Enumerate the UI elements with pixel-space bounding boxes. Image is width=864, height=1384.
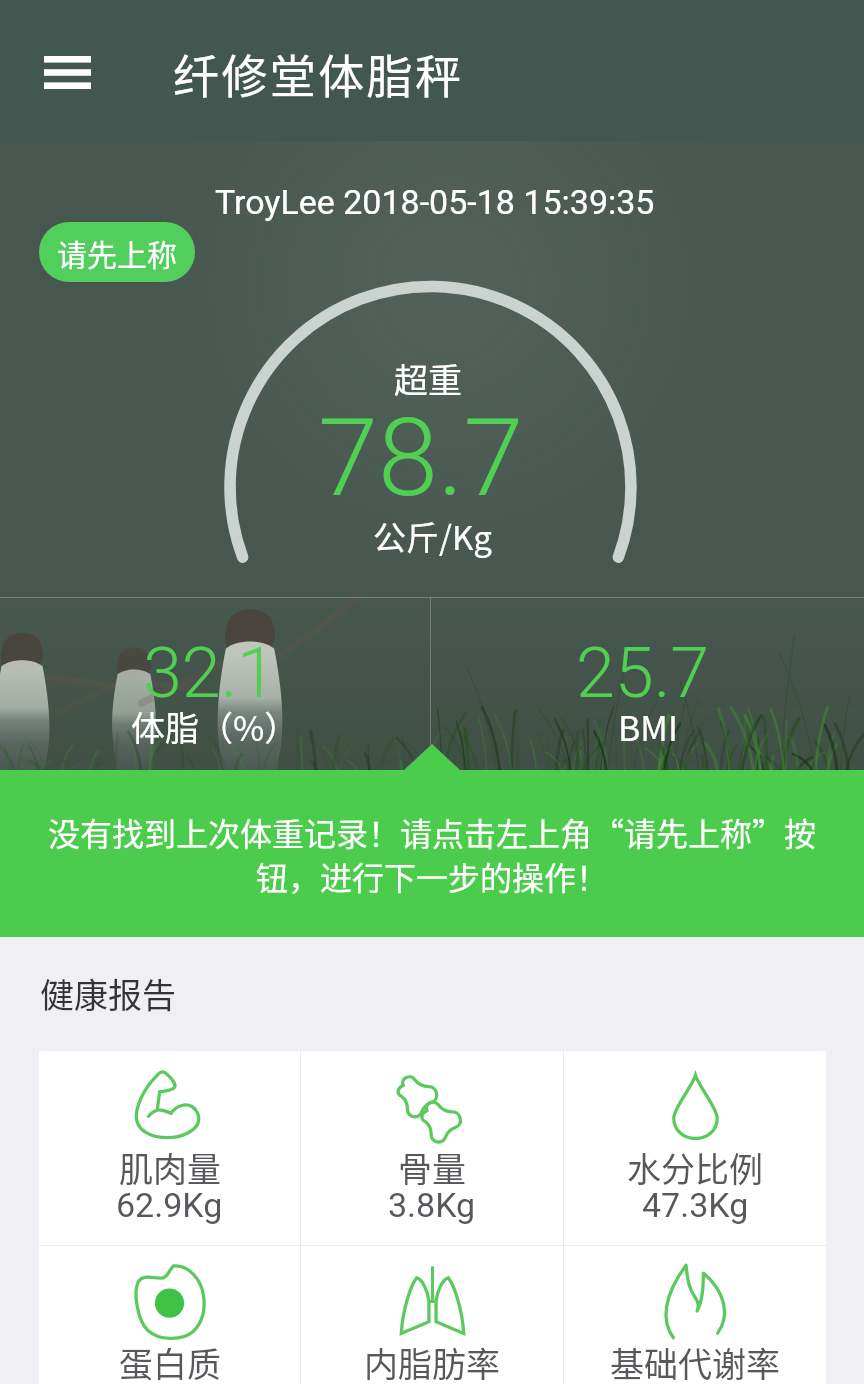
button[interactable]: 肌肉量	[39, 1051, 300, 1245]
staticText: 骨量	[398, 1143, 466, 1192]
staticText: 3.8Kg	[388, 1185, 476, 1225]
staticText: BMI	[618, 702, 678, 751]
staticText: 78.7	[318, 395, 524, 522]
staticText: 肌肉量	[119, 1143, 221, 1192]
staticText: 纤修堂体脂秤	[173, 40, 464, 107]
staticText: 25.7	[576, 632, 710, 714]
staticText: 32.1	[143, 632, 277, 714]
button[interactable]: 骨量	[301, 1051, 563, 1245]
button[interactable]: 蛋白质	[39, 1246, 300, 1384]
staticText: 超重	[394, 354, 462, 403]
button[interactable]: 25.7	[431, 598, 864, 770]
button[interactable]: 内脂肪率	[301, 1246, 563, 1384]
staticText: 内脂肪率	[364, 1338, 500, 1384]
staticText: 健康报告	[40, 969, 176, 1018]
staticText: 没有找到上次体重记录！请点击左上角“请先上称”按钮，进行下一步的操作！	[48, 809, 816, 899]
button[interactable]: Open navigation menu	[22, 26, 112, 116]
button[interactable]: 水分比例	[564, 1051, 826, 1245]
staticText: 水分比例	[627, 1143, 763, 1192]
staticText: 蛋白质	[119, 1338, 221, 1384]
staticText: 62.9Kg	[116, 1185, 223, 1225]
button[interactable]: 请先上称	[39, 222, 195, 282]
staticText: 基础代谢率	[610, 1338, 780, 1384]
staticText: 公斤/Kg	[373, 512, 492, 560]
staticText: 请先上称	[57, 231, 177, 274]
staticText: 47.3Kg	[642, 1185, 749, 1225]
button[interactable]: 32.1	[0, 598, 430, 770]
staticText: 体脂（%）	[131, 702, 299, 751]
button[interactable]: 基础代谢率	[564, 1246, 826, 1384]
staticText: TroyLee 2018-05-18 15:39:35	[215, 182, 655, 222]
